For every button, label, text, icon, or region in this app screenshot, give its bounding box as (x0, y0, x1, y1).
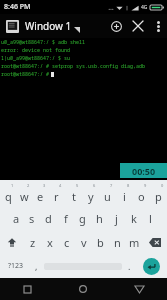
staticText: k (131, 211, 137, 226)
staticText: h (96, 211, 103, 226)
button[interactable]: u0_a99@wt88647:/ $ adb shell (0, 38, 167, 180)
staticText: m (129, 235, 140, 250)
button[interactable]: Enter (137, 254, 165, 278)
button[interactable]: Shift (0, 230, 24, 254)
staticText: f (64, 211, 68, 226)
staticText: 3 (43, 183, 46, 188)
button[interactable]: m (126, 230, 143, 254)
button[interactable]: 1 (0, 182, 16, 206)
button[interactable]: 4 (48, 182, 65, 206)
staticText: y (88, 189, 94, 204)
staticText: t (72, 189, 76, 204)
staticText: u0_a99@wt88647:/ $ adb shell (1, 39, 86, 46)
button[interactable]: c (58, 230, 75, 254)
button[interactable]: b (92, 230, 109, 254)
staticText: c (64, 235, 70, 250)
staticText: b (97, 235, 104, 250)
staticText: Window 1 (25, 19, 72, 33)
button[interactable]: k (125, 206, 142, 230)
staticText: ?123 (8, 261, 24, 271)
staticText: o (138, 189, 145, 204)
staticText: error: device not found (1, 47, 71, 54)
staticText: v (81, 235, 87, 250)
staticText: 8 (127, 183, 130, 188)
staticText: 9 (144, 183, 147, 188)
button[interactable]: g (74, 206, 91, 230)
staticText: 8:46 PM (4, 2, 31, 12)
button[interactable]: z (24, 230, 41, 254)
staticText: x (47, 235, 53, 250)
button[interactable]: Recent apps (0, 278, 55, 300)
button[interactable]: ?123 (2, 254, 29, 278)
staticText: 1|u0_a99@wt88647:/ $ su (1, 55, 71, 62)
button[interactable]: l (142, 206, 159, 230)
button[interactable]: s (24, 206, 40, 230)
staticText: g (79, 211, 86, 226)
button[interactable]: 0 (150, 182, 167, 206)
button[interactable]: j (108, 206, 125, 230)
staticText: j (115, 211, 118, 226)
button[interactable]: 7 (99, 182, 116, 206)
button[interactable]: f (57, 206, 74, 230)
button[interactable]: Home (55, 278, 111, 300)
staticText: r (54, 189, 59, 204)
button[interactable]: a (8, 206, 24, 230)
staticText: root@wt88647:/ # setprop sys.usb.config … (1, 63, 146, 70)
staticText: 6 (93, 183, 96, 188)
button[interactable]: d (40, 206, 57, 230)
staticText: n (114, 235, 121, 250)
staticText: 00:50 (132, 165, 156, 177)
staticText: z (30, 235, 36, 250)
button[interactable]: h (91, 206, 108, 230)
staticText: 4G (141, 4, 148, 11)
button[interactable]: 2 (16, 182, 32, 206)
staticText: u (104, 189, 111, 204)
button[interactable]: More options (149, 17, 167, 35)
staticText: root@wt88647:/ # (1, 71, 50, 78)
button[interactable]: n (109, 230, 126, 254)
button[interactable]: 9 (133, 182, 150, 206)
button[interactable]: New window (105, 15, 127, 37)
button[interactable]: , (29, 254, 44, 278)
staticText: q (5, 189, 12, 204)
button[interactable]: . (122, 254, 137, 278)
staticText: p (155, 189, 162, 204)
staticText: 0 (161, 183, 164, 188)
button[interactable]: x (41, 230, 58, 254)
staticText: 1 (11, 183, 14, 188)
button[interactable]: Window 1 (20, 14, 105, 38)
staticText: d (45, 211, 52, 226)
staticText: i (123, 189, 126, 204)
staticText: l (149, 211, 152, 226)
staticText: w (20, 189, 29, 204)
staticText: e (37, 189, 44, 204)
button[interactable]: 3 (32, 182, 48, 206)
button[interactable]: Close window (127, 15, 149, 37)
staticText: s (29, 211, 35, 226)
button[interactable]: 00:50 (120, 163, 167, 178)
button[interactable]: 5 (65, 182, 82, 206)
button[interactable]: Back (111, 278, 167, 300)
staticText: 2 (27, 183, 30, 188)
button[interactable]: Backspace (143, 230, 167, 254)
staticText: . (128, 260, 131, 272)
staticText: 4 (59, 183, 62, 188)
button[interactable]: Terminal (4, 18, 20, 34)
button[interactable]: v (75, 230, 92, 254)
staticText: 5 (76, 183, 79, 188)
staticText: a (13, 211, 20, 226)
staticText: , (35, 260, 38, 272)
button[interactable]: 8 (116, 182, 133, 206)
staticText: 7 (110, 183, 113, 188)
button[interactable]: 6 (82, 182, 99, 206)
